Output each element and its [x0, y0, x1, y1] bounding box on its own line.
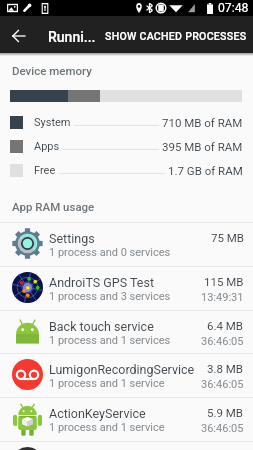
staticText: LumigonRecordingService [49, 362, 195, 377]
button[interactable]: Back touch service [0, 310, 253, 354]
staticText: 710 MB of RAM [162, 116, 243, 129]
staticText: Back touch service [49, 319, 195, 334]
button[interactable]: Navigate up [6, 23, 31, 48]
staticText: ActionKeyService [49, 406, 195, 421]
staticText: 1 process and 3 services [49, 290, 171, 303]
staticText: 5.9 MB [207, 406, 244, 419]
staticText: Settings [49, 231, 195, 246]
staticText: 3.8 MB [207, 362, 244, 375]
staticText: 07:48 [218, 1, 249, 15]
staticText: 1.7 GB of RAM [168, 164, 243, 177]
staticText: 6.4 MB [207, 319, 244, 332]
staticText: App RAM usage [12, 200, 95, 213]
staticText: 115 MB [204, 275, 244, 288]
staticText: 75 MB [211, 231, 244, 244]
staticText: Device memory [12, 64, 92, 77]
staticText: 36:46:05 [201, 378, 244, 391]
button[interactable]: AndroiTS GPS Test [0, 266, 253, 310]
button[interactable]: ActionKeyService [0, 397, 253, 441]
staticText: Apps [34, 140, 60, 153]
button[interactable]: LumigonRecordingService [0, 353, 253, 397]
button[interactable]: Settings [0, 222, 253, 266]
staticText: Free [34, 164, 56, 177]
button[interactable]: SHOW CACHED PROCESSES [101, 23, 251, 49]
staticText: 1 process and 1 service [49, 377, 165, 390]
staticText: 13:49:31 [201, 291, 244, 304]
staticText: Runni... [48, 29, 96, 45]
staticText: System [34, 116, 71, 129]
staticText: AndroiTS GPS Test [49, 275, 195, 290]
staticText: 1 process and 1 services [49, 334, 171, 347]
staticText: 36:46:05 [201, 422, 244, 435]
staticText: 36:46:05 [201, 335, 244, 348]
staticText: 395 MB of RAM [162, 140, 243, 153]
staticText: SHOW CACHED PROCESSES [105, 30, 247, 42]
staticText: 1 process and 0 services [49, 246, 171, 259]
staticText: 1 process and 1 service [49, 421, 165, 434]
